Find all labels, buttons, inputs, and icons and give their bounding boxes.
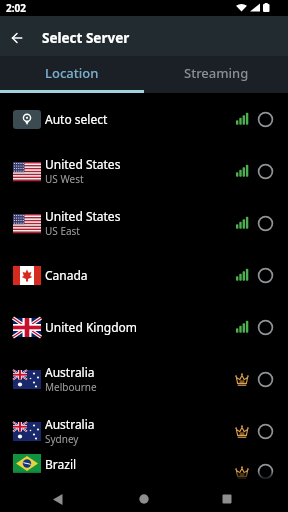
staticText: United States — [45, 156, 121, 172]
staticText: Australia — [45, 364, 95, 380]
staticText: United States — [45, 208, 121, 224]
button[interactable]: Brazil — [0, 457, 288, 486]
button[interactable]: United Kingdom — [0, 301, 288, 353]
staticText: US West — [45, 172, 84, 186]
button[interactable]: Australia — [0, 353, 288, 405]
button[interactable] — [44, 486, 71, 512]
button[interactable]: Australia — [0, 405, 288, 457]
staticText: Select Server — [42, 29, 130, 47]
button[interactable]: United States — [0, 145, 288, 197]
staticText: United Kingdom — [45, 319, 138, 335]
staticText: Brazil — [45, 456, 77, 472]
button[interactable]: Streaming — [144, 56, 288, 93]
button[interactable]: Canada — [0, 249, 288, 301]
button[interactable] — [0, 16, 34, 56]
staticText: Melbourne — [45, 380, 97, 394]
staticText: Location — [45, 64, 99, 82]
staticText: Auto select — [45, 111, 108, 127]
staticText: 2:02 — [6, 1, 26, 15]
button[interactable]: Auto select — [0, 93, 288, 145]
staticText: Canada — [45, 267, 88, 283]
staticText: Sydney — [45, 432, 79, 446]
staticText: Streaming — [184, 64, 249, 82]
staticText: Australia — [45, 416, 95, 432]
staticText: US East — [45, 224, 80, 238]
button[interactable]: Location — [0, 56, 144, 93]
button[interactable]: United States — [0, 197, 288, 249]
button[interactable] — [213, 486, 240, 512]
button[interactable] — [130, 486, 157, 512]
